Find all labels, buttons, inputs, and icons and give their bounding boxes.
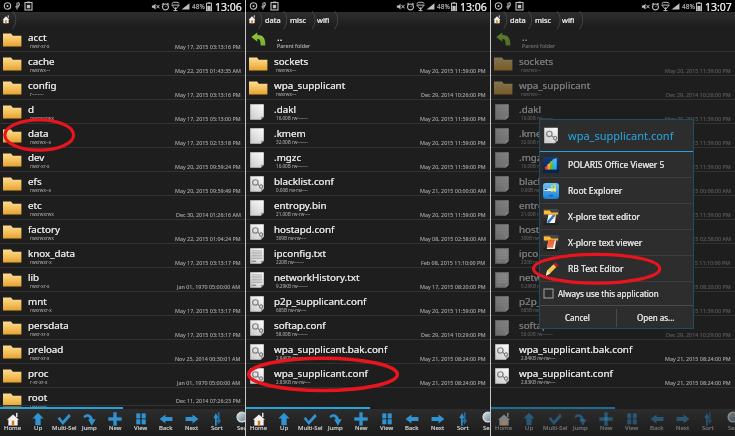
button[interactable]: Root Explorer [539, 178, 694, 204]
button[interactable]: etc [0, 196, 245, 220]
button[interactable]: Jump [567, 409, 593, 436]
button[interactable]: New [593, 409, 619, 436]
button[interactable]: .dakl [491, 100, 735, 124]
button[interactable]: hostapd.conf [246, 220, 490, 244]
staticText: factory [28, 223, 61, 236]
button[interactable]: blacklist.conf [246, 172, 490, 196]
button[interactable]: Sear [230, 409, 256, 436]
button[interactable]: Multi-Sel [51, 409, 77, 436]
button[interactable]: factory [0, 220, 245, 244]
button[interactable]: View [128, 409, 154, 436]
button[interactable]: entropy.bin [246, 196, 490, 220]
button[interactable]: .dakl [246, 100, 490, 124]
button[interactable]: Next [425, 409, 451, 436]
button[interactable]: Home [0, 409, 26, 436]
button[interactable]: Up [25, 409, 51, 436]
button[interactable]: preload [0, 340, 245, 364]
button[interactable]: wifi [317, 12, 330, 28]
button[interactable]: data [265, 12, 281, 28]
button[interactable]: ipconfig.txt [246, 244, 490, 268]
button[interactable]: d [0, 100, 245, 124]
button[interactable]: Sear [476, 409, 502, 436]
staticText: .dakl [274, 103, 296, 116]
button[interactable]: misc [290, 12, 307, 28]
button[interactable]: Multi-Sel [542, 409, 568, 436]
button[interactable]: Sort [204, 409, 230, 436]
button[interactable]: efs [0, 172, 245, 196]
button[interactable]: mnt [0, 292, 245, 316]
button[interactable]: .mgzc [246, 148, 490, 172]
button[interactable]: softap.conf [246, 316, 490, 340]
button[interactable]: Sort [450, 409, 476, 436]
button[interactable]: networkHistory.txt [246, 268, 490, 292]
button[interactable]: lib [0, 268, 245, 292]
button[interactable]: persdata [0, 316, 245, 340]
button[interactable]: POLARIS Office Viewer 5 [539, 152, 694, 178]
button[interactable]: Jump [322, 409, 348, 436]
button[interactable]: wpa_supplicant.bak.conf [246, 340, 490, 364]
button[interactable]: .. [491, 28, 735, 52]
button[interactable]: Home [248, 15, 256, 24]
staticText: preload [28, 343, 64, 356]
button[interactable]: .. [246, 28, 490, 52]
button[interactable]: Jump [76, 409, 102, 436]
button[interactable]: ipconfig.txt [491, 244, 735, 268]
button[interactable]: misc [535, 12, 552, 28]
button[interactable]: blacklist.conf [491, 172, 735, 196]
button[interactable]: Back [153, 409, 179, 436]
button[interactable]: data [0, 124, 245, 148]
button[interactable]: Home [491, 409, 517, 436]
staticText: .. [277, 31, 283, 44]
button[interactable]: knox_data [0, 244, 245, 268]
button[interactable]: wpa_supplicant.conf [491, 364, 735, 388]
button[interactable]: wifi [562, 12, 575, 28]
button[interactable]: New [348, 409, 374, 436]
button[interactable]: Multi-Sel [297, 409, 323, 436]
button[interactable]: wpa_supplicant.conf [246, 364, 490, 388]
button[interactable]: New [102, 409, 128, 436]
button[interactable]: Cancel [539, 306, 616, 329]
button[interactable]: wpa_supplicant [246, 76, 490, 100]
button[interactable]: Home [493, 15, 501, 24]
button[interactable]: X-plore text viewer [539, 230, 694, 256]
button[interactable]: View [374, 409, 400, 436]
button[interactable]: root [0, 388, 245, 406]
button[interactable]: entropy.bin [491, 196, 735, 220]
button[interactable]: Always use this application [544, 282, 694, 305]
button[interactable]: config [0, 76, 245, 100]
staticText: May 20, 2015 09:59:49 PM [175, 187, 241, 194]
staticText: entropy.bin [274, 199, 327, 212]
button[interactable]: Sort [695, 409, 721, 436]
button[interactable]: softap.conf [491, 316, 735, 340]
button[interactable]: networkHistory.txt [491, 268, 735, 292]
button[interactable]: data [510, 12, 526, 28]
button[interactable]: p2p_supplicant.conf [246, 292, 490, 316]
button[interactable]: X-plore text editor [539, 204, 694, 230]
button[interactable]: .kmem [246, 124, 490, 148]
staticText: Jan 01, 1970 05:00:00 AM [177, 283, 241, 290]
button[interactable]: RB Text Editor [539, 256, 694, 282]
button[interactable]: Next [670, 409, 696, 436]
button[interactable]: dev [0, 148, 245, 172]
button[interactable]: proc [0, 364, 245, 388]
button[interactable]: Open as... [617, 306, 694, 329]
button[interactable]: sockets [491, 52, 735, 76]
button[interactable]: wpa_supplicant [491, 76, 735, 100]
button[interactable]: wpa_supplicant.bak.conf [491, 340, 735, 364]
button[interactable]: acct [0, 28, 245, 52]
button[interactable]: .mgzc [491, 148, 735, 172]
button[interactable]: p2p_supplicant.conf [491, 292, 735, 316]
button[interactable]: Sear [721, 409, 735, 436]
button[interactable]: hostapd.conf [491, 220, 735, 244]
button[interactable]: Back [399, 409, 425, 436]
button[interactable]: Home [2, 15, 10, 24]
button[interactable]: View [619, 409, 645, 436]
button[interactable]: Back [644, 409, 670, 436]
button[interactable]: .kmem [491, 124, 735, 148]
button[interactable]: Up [516, 409, 542, 436]
button[interactable]: cache [0, 52, 245, 76]
button[interactable]: Next [179, 409, 205, 436]
button[interactable]: Up [271, 409, 297, 436]
button[interactable]: sockets [246, 52, 490, 76]
button[interactable]: Home [246, 409, 272, 436]
